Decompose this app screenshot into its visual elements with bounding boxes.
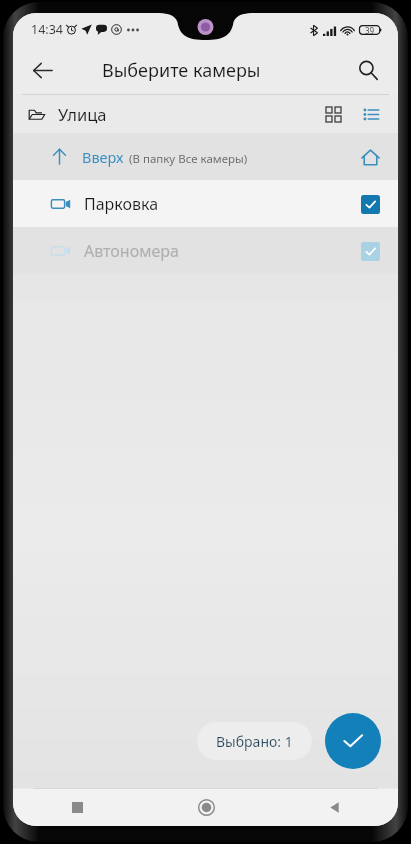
staticText: 14:34	[31, 21, 63, 38]
button[interactable]: Назад	[20, 48, 64, 92]
button[interactable]: Улица	[13, 95, 398, 133]
staticText: Автономера	[84, 240, 179, 262]
button[interactable]: Последние приложения	[13, 789, 142, 826]
button[interactable]: Вверх	[13, 133, 398, 180]
staticText: Выбрано: 1	[216, 732, 293, 751]
button[interactable]: Поиск	[346, 48, 390, 92]
button[interactable]: Сетка	[315, 96, 351, 132]
staticText: Парковка	[84, 193, 159, 215]
staticText: 39	[365, 25, 375, 36]
button[interactable]: Домой	[142, 789, 270, 826]
button[interactable]: Выбрать Автономера	[349, 230, 391, 272]
staticText: Вверх	[82, 147, 124, 167]
button[interactable]: Назад	[270, 789, 398, 826]
staticText: Выберите камеры	[102, 58, 261, 83]
button[interactable]: Подтвердить	[325, 713, 381, 769]
button[interactable]: Выбрано: 1	[197, 722, 312, 760]
button[interactable]: В корневую папку	[349, 136, 391, 178]
button[interactable]: Парковка	[13, 180, 398, 227]
button[interactable]: Автономера	[13, 227, 398, 274]
button[interactable]: Список	[353, 96, 389, 132]
button[interactable]: Выбрать Парковка	[349, 183, 391, 225]
staticText: (В папку Все камеры)	[129, 151, 248, 167]
staticText: Улица	[58, 103, 107, 125]
